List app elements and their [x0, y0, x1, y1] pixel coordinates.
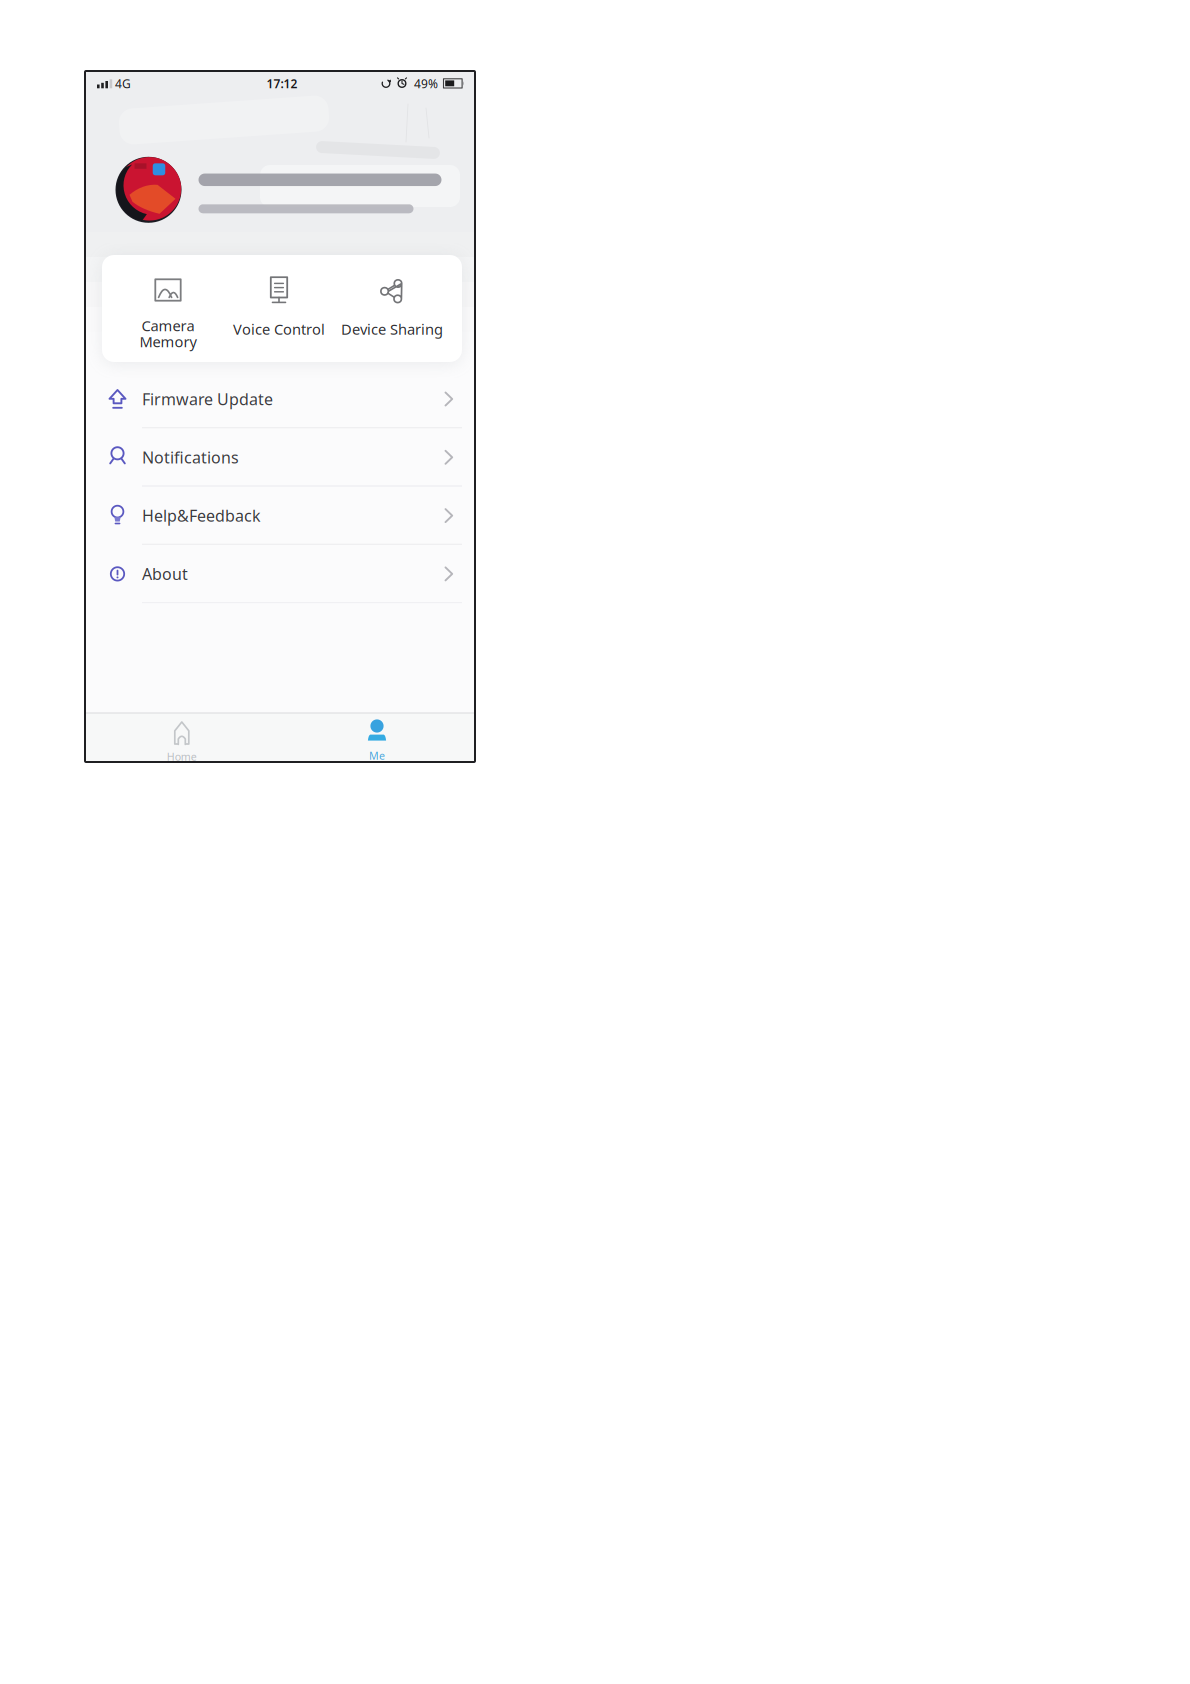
button[interactable]: Help&Feedback [104, 489, 454, 543]
button[interactable]: About [104, 547, 454, 601]
staticText: About [142, 563, 188, 584]
staticText: Memory [139, 332, 196, 351]
staticText: Voice Control [233, 319, 325, 339]
button[interactable]: Camera [112, 257, 224, 357]
staticText: 17:12 [266, 75, 297, 91]
staticText: Help&Feedback [142, 505, 261, 526]
button[interactable]: Me [280, 713, 474, 761]
button[interactable]: Voice Control [223, 257, 335, 357]
button[interactable]: Device Sharing [336, 257, 448, 357]
staticText: Firmware Update [142, 388, 273, 410]
button[interactable]: Firmware Update [104, 372, 454, 426]
staticText: Notifications [142, 447, 239, 468]
staticText: Home [167, 749, 197, 764]
staticText: Camera [141, 316, 194, 335]
button[interactable]: Account [115, 157, 475, 223]
button[interactable]: Notifications [104, 430, 454, 484]
button[interactable]: Home [86, 713, 280, 761]
staticText: 49% [414, 75, 438, 91]
staticText: 4G [115, 75, 131, 91]
staticText: Device Sharing [341, 319, 443, 339]
staticText: Me [369, 748, 385, 763]
